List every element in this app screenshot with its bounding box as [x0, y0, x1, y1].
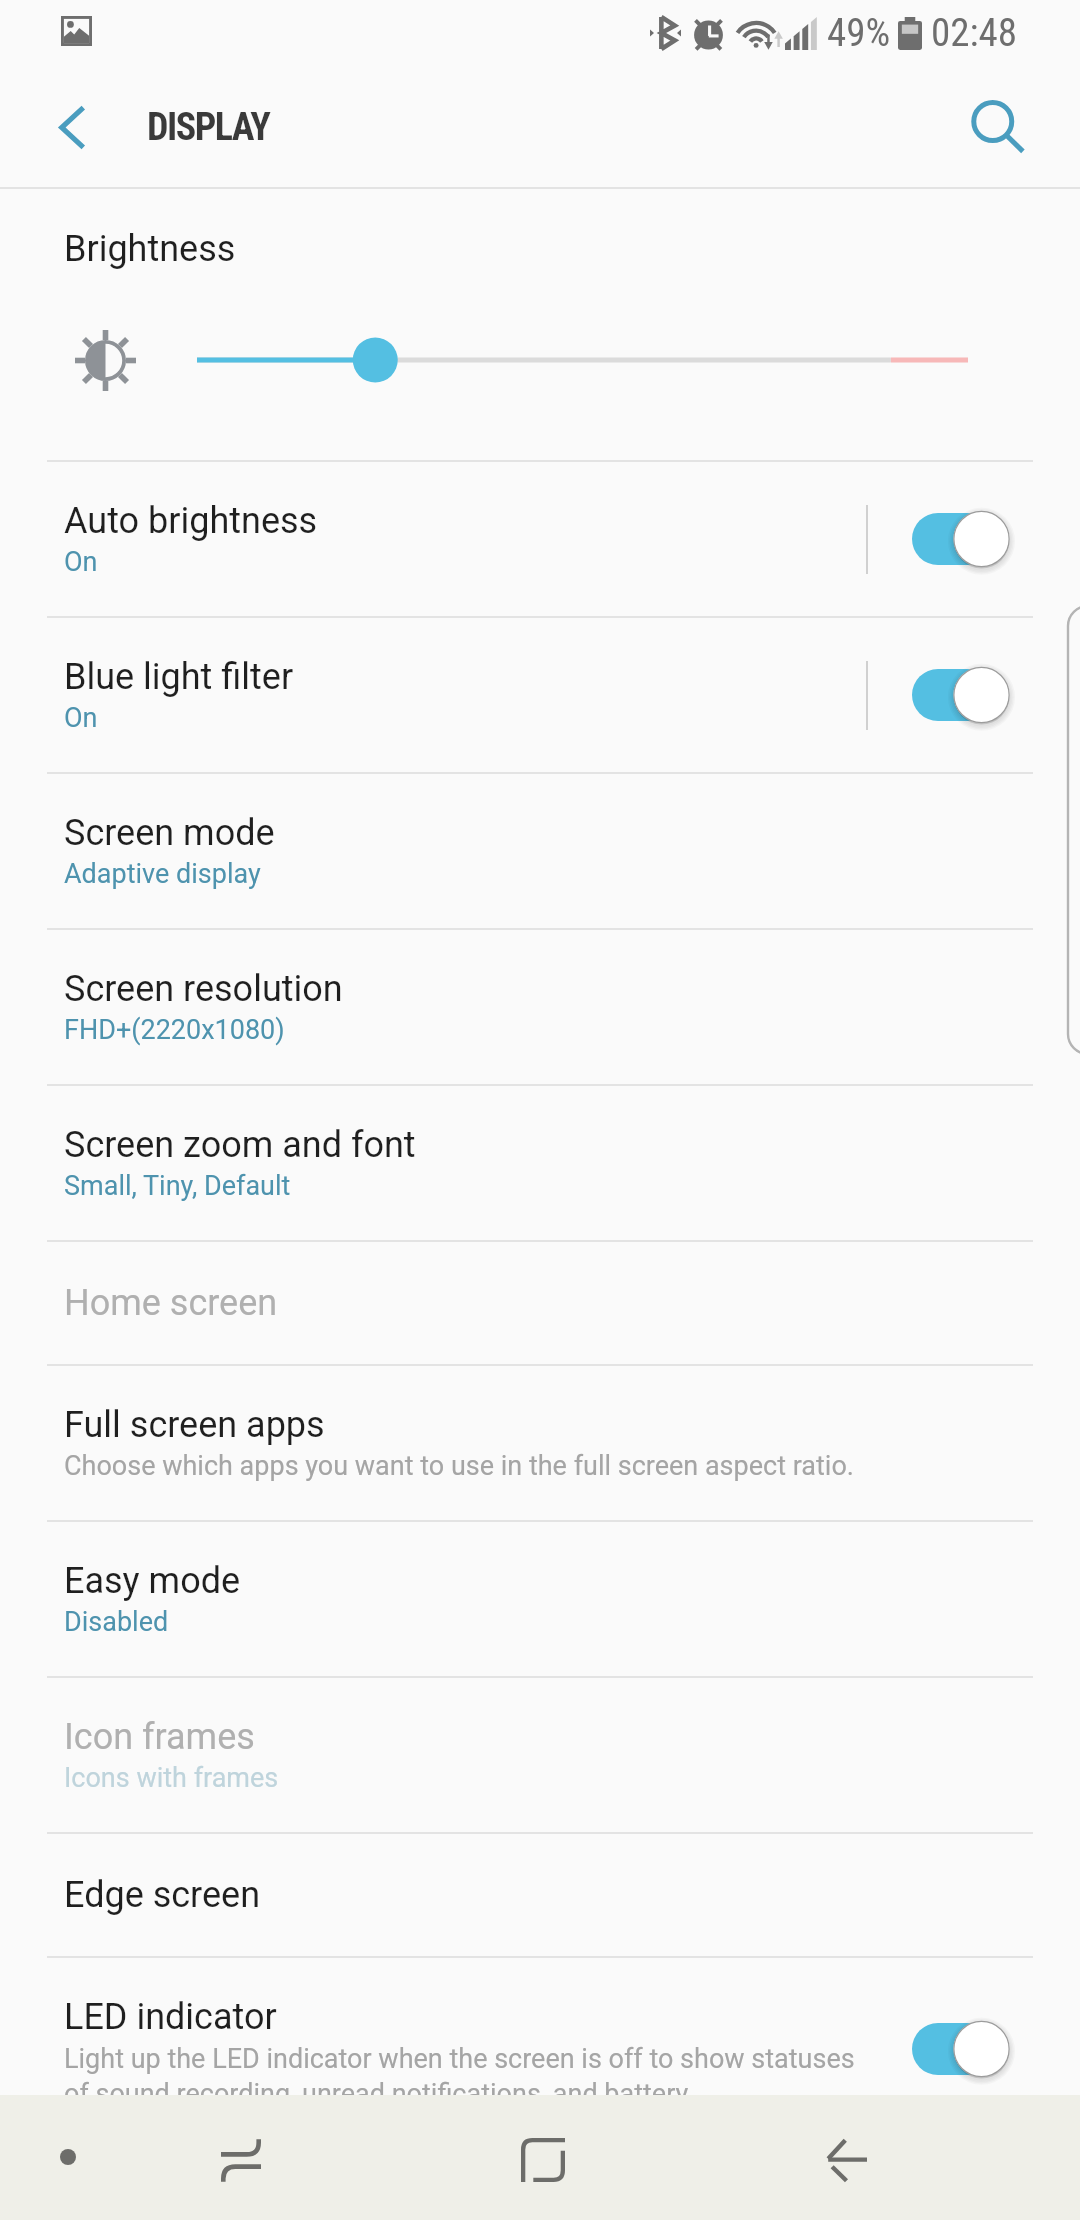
button[interactable]: Navigate up	[26, 81, 118, 173]
button[interactable]: Blue light filter	[0, 618, 1080, 772]
staticText: Blue light filter	[64, 656, 294, 698]
button[interactable]: Back	[786, 2100, 906, 2220]
button[interactable]: Home	[483, 2100, 603, 2220]
staticText: DISPLAY	[147, 105, 270, 150]
button[interactable]: Home screen	[0, 1242, 1080, 1364]
button[interactable]: Auto brightness	[861, 462, 1061, 616]
button[interactable]: Search	[953, 82, 1045, 174]
staticText: Screen mode	[64, 812, 275, 854]
button[interactable]: Screen mode	[0, 774, 1080, 928]
button[interactable]: Full screen apps	[0, 1366, 1080, 1520]
button[interactable]: LED indicator	[861, 1991, 1061, 2107]
staticText: Edge screen	[64, 1874, 261, 1916]
button[interactable]: LED indicator	[0, 1958, 1080, 2158]
button[interactable]: Easy mode	[0, 1522, 1080, 1676]
staticText: 49%	[827, 10, 891, 56]
button[interactable]: Icon frames	[0, 1678, 1080, 1832]
staticText: Easy mode	[64, 1560, 241, 1602]
button[interactable]: Screen zoom and font	[0, 1086, 1080, 1240]
staticText: Auto brightness	[64, 500, 318, 542]
staticText: Home screen	[64, 1282, 278, 1324]
staticText: Icons with frames	[64, 1762, 279, 1794]
button[interactable]: Edge screen	[0, 1834, 1080, 1956]
staticText: Screen resolution	[64, 968, 343, 1010]
staticText: LED indicator	[64, 1996, 277, 2038]
staticText: Full screen apps	[64, 1404, 325, 1446]
staticText: Icon frames	[64, 1716, 255, 1758]
button[interactable]: Screen resolution	[0, 930, 1080, 1084]
staticText: Choose which apps you want to use in the…	[64, 1450, 854, 1482]
staticText: Small, Tiny, Default	[64, 1170, 291, 1202]
button[interactable]: Blue light filter	[861, 618, 1061, 772]
staticText: Disabled	[64, 1606, 169, 1638]
staticText: FHD+(2220x1080)	[64, 1014, 285, 1046]
staticText: Adaptive display	[64, 858, 261, 890]
staticText: Light up the LED indicator when the scre…	[64, 2043, 869, 2109]
staticText: On	[64, 546, 98, 578]
staticText: On	[64, 702, 98, 734]
staticText: Brightness	[64, 228, 236, 270]
button[interactable]: Auto brightness	[0, 462, 1080, 616]
button[interactable]: Recent apps	[181, 2100, 301, 2220]
staticText: 02:48	[931, 10, 1018, 56]
staticText: Screen zoom and font	[64, 1124, 416, 1166]
